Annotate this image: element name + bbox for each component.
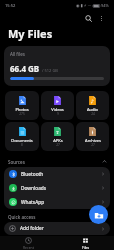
staticText: / 512 GB <box>42 68 58 73</box>
staticText: Audio <box>87 107 98 112</box>
staticText: Archives <box>85 138 101 143</box>
staticText: Files <box>82 245 90 250</box>
button[interactable]: More options <box>95 12 108 25</box>
button[interactable]: Videos <box>41 91 74 120</box>
button[interactable]: Search <box>82 12 95 25</box>
staticText: All files <box>10 51 25 57</box>
button[interactable]: Add folder <box>4 222 110 235</box>
staticText: Photos <box>15 107 29 112</box>
button[interactable]: APKs <box>41 122 74 151</box>
staticText: ◉ ▮ ⚡ ⋯ <box>76 3 92 8</box>
staticText: 15:52 <box>5 3 16 8</box>
staticText: Downloads <box>21 185 47 192</box>
staticText: 9 <box>57 112 59 116</box>
staticText: 27 <box>91 143 95 147</box>
button[interactable]: Audio <box>76 91 109 120</box>
staticText: Recent <box>23 245 34 250</box>
button[interactable]: WhatsApp <box>4 195 110 209</box>
staticText: Sources <box>8 159 25 165</box>
staticText: Documents <box>11 138 33 143</box>
staticText: Add folder <box>20 225 44 232</box>
button[interactable]: All files <box>4 46 110 86</box>
staticText: Videos <box>51 107 64 112</box>
staticText: Bluetooth <box>21 171 44 178</box>
button[interactable]: Files <box>57 236 114 250</box>
button[interactable]: Sources <box>8 156 107 167</box>
staticText: WhatsApp <box>21 199 45 206</box>
button[interactable]: Documents <box>5 122 39 151</box>
button[interactable]: Add <box>89 205 108 224</box>
button[interactable]: Archives <box>76 122 109 151</box>
staticText: 275 <box>19 112 25 116</box>
staticText: 27 <box>56 143 60 147</box>
staticText: 8 <box>21 143 23 147</box>
staticText: APKs <box>53 138 63 143</box>
button[interactable]: Bluetooth <box>4 167 110 181</box>
button[interactable]: Recent <box>0 236 57 250</box>
button[interactable]: Photos <box>5 91 39 120</box>
staticText: 94% <box>101 3 109 8</box>
staticText: Quick access <box>8 214 36 220</box>
button[interactable]: Downloads <box>4 181 110 195</box>
staticText: 66.4 GB <box>10 63 40 74</box>
staticText: My Files <box>8 26 53 41</box>
staticText: 24 <box>91 112 95 116</box>
